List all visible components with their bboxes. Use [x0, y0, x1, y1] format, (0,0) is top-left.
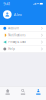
- staticText: Privacy & Data: [8, 40, 25, 44]
- button[interactable]: Search: [15, 86, 31, 100]
- button[interactable]: Notifications: [0, 32, 46, 39]
- staticText: Help: [8, 47, 15, 51]
- staticText: 9:41: [3, 1, 10, 6]
- button[interactable]: Profile: [31, 86, 46, 100]
- staticText: Alex: [14, 12, 22, 17]
- button[interactable]: Privacy & Data: [0, 39, 46, 46]
- button[interactable]: Help: [0, 46, 46, 53]
- staticText: Notifications: [8, 33, 25, 37]
- staticText: Account: [8, 26, 19, 30]
- button[interactable]: Home: [0, 86, 15, 100]
- button[interactable]: Account: [0, 25, 46, 32]
